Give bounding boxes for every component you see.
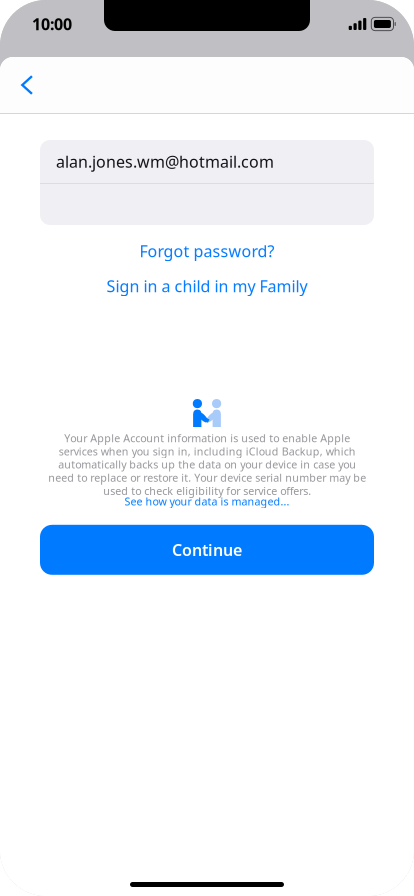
button[interactable]: Back — [5, 63, 49, 107]
staticText: Your Apple Account information is used t… — [48, 431, 366, 498]
staticText: Forgot password? — [139, 240, 274, 262]
staticText: Sign in a child in my Family — [106, 275, 307, 297]
button[interactable]: Continue — [40, 525, 374, 575]
button[interactable]: Sign in a child in my Family — [0, 272, 414, 300]
staticText: alan.jones.wm@hotmail.com — [56, 151, 274, 172]
staticText: 10:00 — [32, 13, 72, 35]
button[interactable]: Forgot password? — [0, 237, 414, 265]
staticText: See how your data is managed... — [124, 494, 289, 508]
staticText: Continue — [172, 539, 242, 560]
button[interactable]: See how your data is managed... — [124, 495, 289, 508]
